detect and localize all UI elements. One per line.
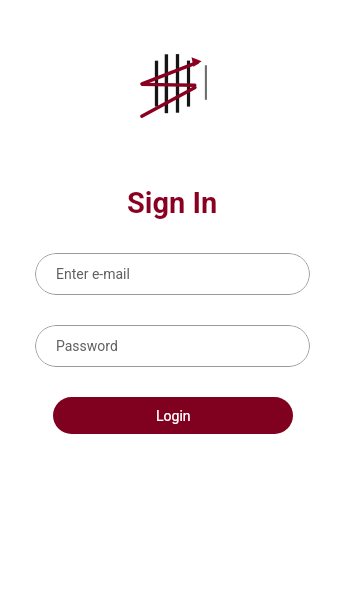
staticText: Sign In	[127, 186, 218, 220]
staticText: Password	[56, 338, 118, 354]
other: App logo	[0, 0, 345, 592]
button[interactable]: Password	[35, 325, 310, 367]
staticText: Login	[156, 408, 191, 424]
button[interactable]: Login	[53, 397, 293, 434]
button[interactable]: Enter e-mail	[35, 253, 310, 295]
staticText: Enter e-mail	[56, 266, 130, 282]
